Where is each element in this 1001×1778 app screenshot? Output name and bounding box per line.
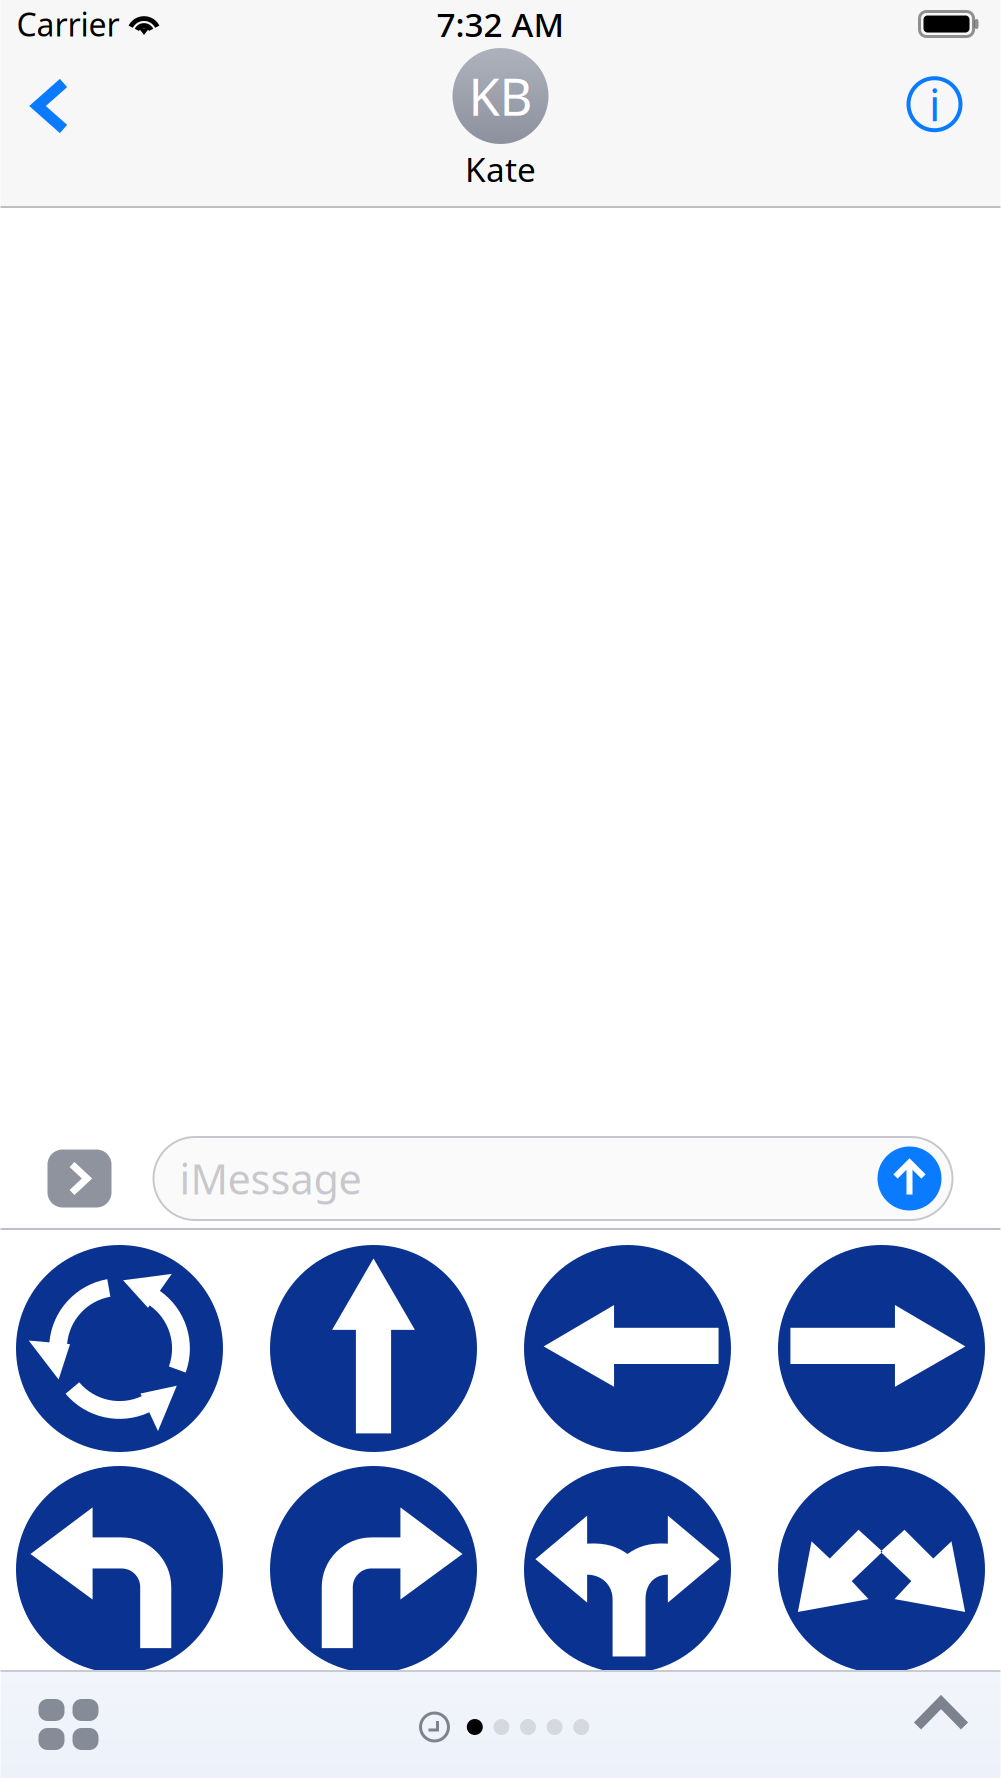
button[interactable]: Expand [894, 1672, 987, 1756]
staticText: Carrier [16, 3, 119, 45]
button[interactable]: Road sign sticker [270, 1245, 477, 1452]
button[interactable]: App drawer [0, 1672, 132, 1777]
button[interactable]: Road sign sticker [778, 1245, 985, 1452]
staticText: 7:32 AM [436, 2, 564, 46]
button[interactable]: Details [882, 49, 986, 159]
staticText: Kate [465, 147, 536, 191]
staticText: i [929, 75, 940, 133]
button[interactable]: Road sign sticker [16, 1245, 223, 1452]
button[interactable]: Back [7, 55, 93, 157]
button[interactable]: Apps [39, 1137, 119, 1219]
button[interactable]: Kate [410, 48, 590, 191]
button[interactable]: Road sign sticker [524, 1245, 731, 1452]
button[interactable]: Send [877, 1146, 941, 1210]
staticText: iMessage [179, 1151, 361, 1206]
button[interactable]: Road sign sticker [778, 1466, 985, 1673]
button[interactable]: Road sign sticker [524, 1466, 731, 1673]
button[interactable]: Road sign sticker [270, 1466, 477, 1673]
button[interactable]: Recents [411, 1704, 457, 1750]
button[interactable]: Road sign sticker [16, 1466, 223, 1673]
staticText: KB [468, 62, 532, 130]
